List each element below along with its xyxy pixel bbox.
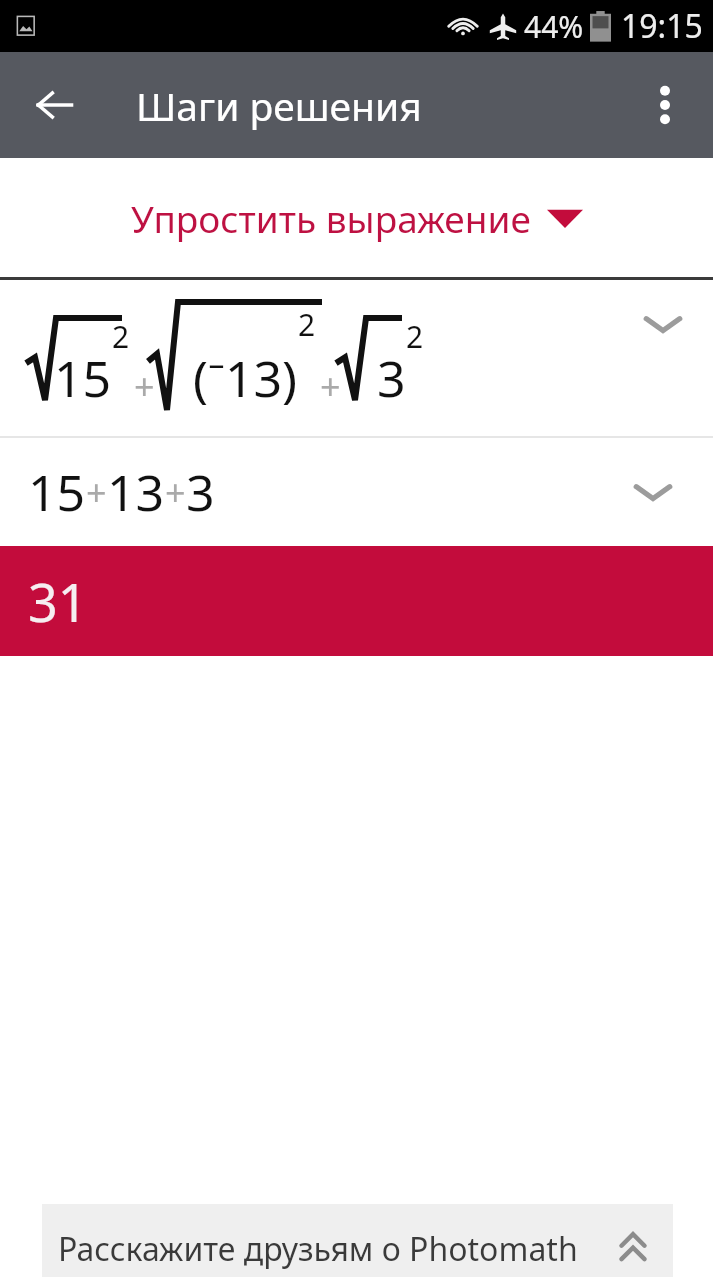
button[interactable]: Расскажите друзьям о Photomath (42, 1204, 673, 1277)
staticText: 31 (28, 566, 88, 637)
button[interactable]: 15 (0, 438, 713, 546)
button[interactable]: 31 (0, 546, 713, 656)
staticText: Шаги решения (136, 79, 422, 132)
staticText: + (320, 362, 341, 411)
staticText: (⁻13) (193, 344, 298, 412)
staticText: 15 (54, 344, 112, 412)
staticText: 13 (107, 458, 165, 526)
button[interactable]: More options (629, 69, 701, 141)
staticText: Расскажите друзьям о Photomath (58, 1227, 578, 1271)
button[interactable]: Expand step (635, 296, 691, 352)
button[interactable]: Expand step (625, 464, 681, 520)
button[interactable]: Упростить выражение (0, 158, 713, 277)
staticText: Упростить выражение (131, 193, 531, 243)
staticText: + (86, 468, 107, 517)
staticText: 2 (112, 316, 130, 357)
staticText: 3 (186, 458, 215, 526)
staticText: + (134, 362, 155, 411)
staticText: + (165, 468, 186, 517)
button[interactable]: Back (18, 69, 90, 141)
staticText: 15 (28, 458, 86, 526)
button[interactable]: 15 (0, 280, 713, 436)
staticText: 3 (377, 344, 406, 412)
staticText: 2 (298, 304, 316, 345)
staticText: 19:15 (621, 4, 703, 48)
staticText: 44% (524, 6, 584, 47)
staticText: 2 (406, 316, 424, 357)
